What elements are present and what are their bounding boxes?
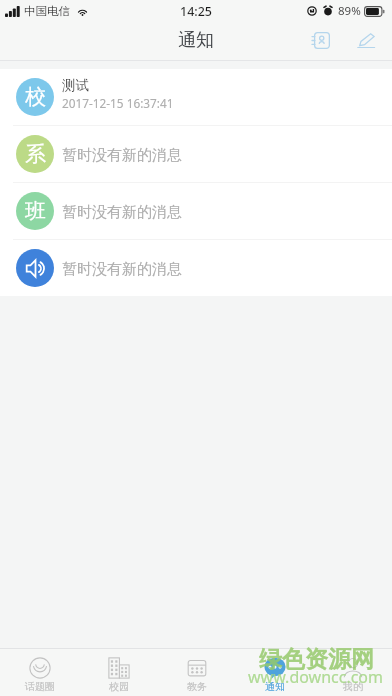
staticText: 中国电信 xyxy=(24,4,70,18)
button[interactable]: Contacts xyxy=(302,21,340,59)
button[interactable]: 班 xyxy=(0,183,392,239)
staticText: 14:25 xyxy=(180,3,213,20)
button[interactable]: Compose message xyxy=(347,21,385,59)
button[interactable]: 系 xyxy=(0,126,392,182)
staticText: 通知 xyxy=(178,29,214,52)
staticText: 89% xyxy=(338,3,361,19)
staticText: 班 xyxy=(25,198,46,224)
button[interactable]: 话题圈 xyxy=(0,653,79,696)
staticText: 绿色资源网 xyxy=(259,645,374,674)
staticText: 测试 xyxy=(62,77,89,94)
staticText: 暂时没有新的消息 xyxy=(62,203,182,222)
staticText: 校 xyxy=(25,84,46,110)
staticText: 话题圈 xyxy=(25,680,55,693)
button[interactable]: 暂时没有新的消息 xyxy=(0,240,392,296)
staticText: www.downcc.com xyxy=(248,666,384,688)
button[interactable]: 我的 xyxy=(314,653,392,696)
button[interactable]: 通知 xyxy=(236,653,314,696)
staticText: 系 xyxy=(25,141,46,167)
staticText: 暂时没有新的消息 xyxy=(62,146,182,165)
staticText: 暂时没有新的消息 xyxy=(62,260,182,279)
staticText: 通知 xyxy=(265,680,285,693)
button[interactable]: 校 xyxy=(0,69,392,125)
staticText: 2017-12-15 16:37:41 xyxy=(62,95,174,111)
staticText: 校园 xyxy=(109,680,129,693)
staticText: 教务 xyxy=(187,680,207,693)
button[interactable]: 校园 xyxy=(79,653,158,696)
button[interactable]: 教务 xyxy=(158,653,236,696)
staticText: 我的 xyxy=(343,680,363,693)
